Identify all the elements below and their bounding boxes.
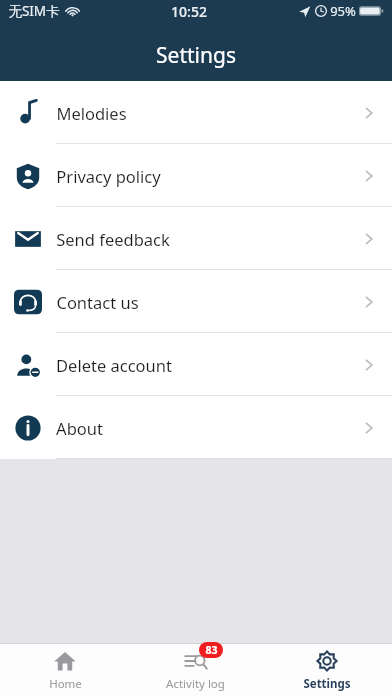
button[interactable]: Delete account	[0, 333, 392, 396]
staticText: Delete account	[56, 354, 172, 376]
staticText: Settings	[156, 41, 236, 70]
staticText: Settings	[303, 676, 351, 692]
button[interactable]: 83	[130, 644, 261, 696]
staticText: Contact us	[56, 291, 139, 313]
button[interactable]: Contact us	[0, 270, 392, 333]
button[interactable]: Privacy policy	[0, 144, 392, 207]
button[interactable]: Melodies	[0, 81, 392, 144]
staticText: 无SIM卡	[8, 2, 60, 20]
staticText: 95%	[330, 2, 356, 20]
button[interactable]: Send feedback	[0, 207, 392, 270]
button[interactable]: About	[0, 396, 392, 459]
staticText: Home	[49, 676, 82, 692]
staticText: Melodies	[56, 102, 127, 124]
staticText: About	[56, 417, 103, 439]
button[interactable]: Home	[0, 644, 130, 696]
staticText: Privacy policy	[56, 165, 161, 187]
button[interactable]: Settings	[261, 644, 392, 696]
staticText: 83	[205, 643, 218, 657]
staticText: 10:52	[171, 2, 207, 21]
staticText: Activity log	[166, 676, 225, 692]
staticText: Send feedback	[56, 228, 170, 250]
